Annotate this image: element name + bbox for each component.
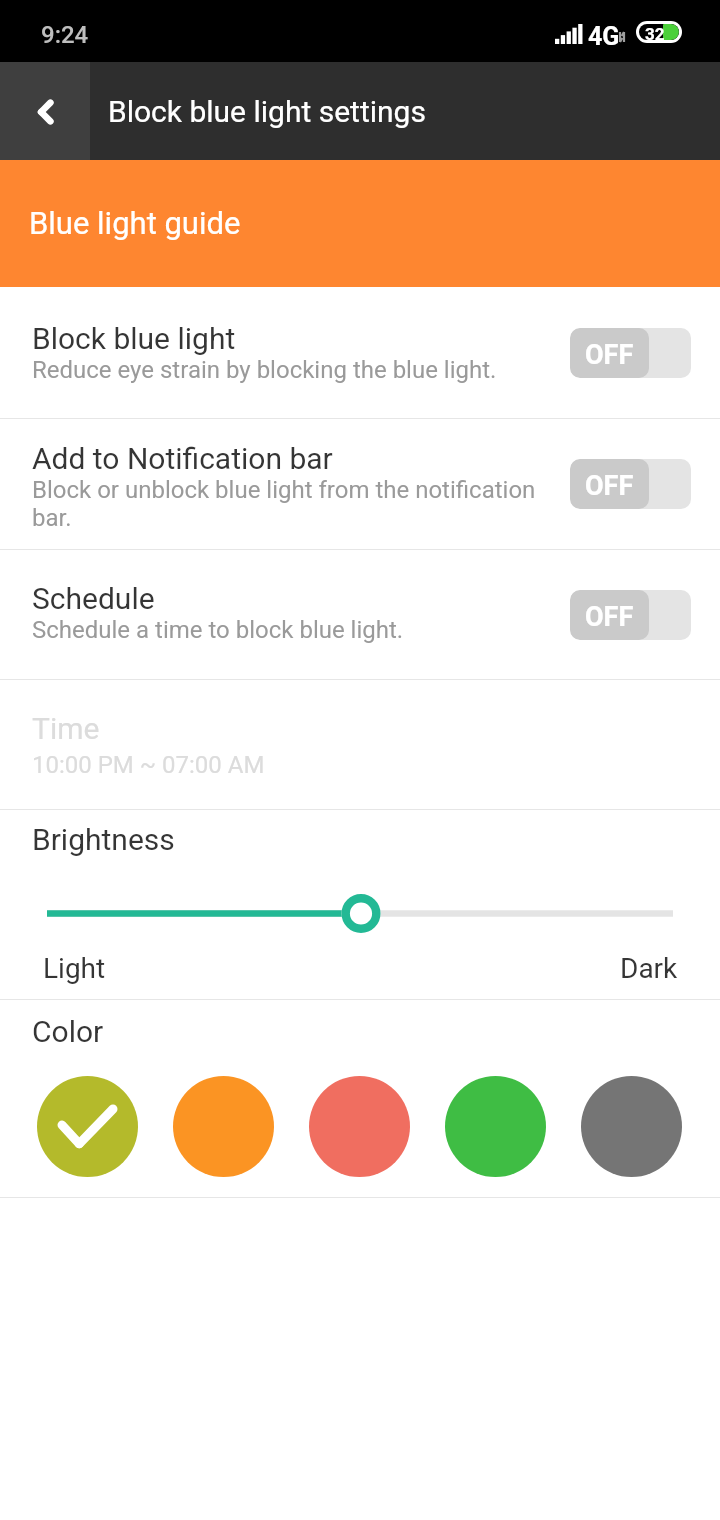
staticText: Reduce eye strain by blocking the blue l… <box>32 356 497 384</box>
staticText: Add to Notification bar <box>32 441 333 476</box>
button[interactable]: Toggle switch, off <box>570 459 691 509</box>
button[interactable]: Schedule <box>0 550 720 679</box>
button[interactable]: Colour option 5 <box>581 1076 682 1177</box>
button[interactable]: Toggle switch, off <box>570 328 691 378</box>
button[interactable]: Colour option 3 <box>309 1076 410 1177</box>
staticText: Blue light guide <box>29 205 241 241</box>
button[interactable]: Time <box>0 680 720 809</box>
staticText: OFF <box>585 470 634 502</box>
staticText: Block or unblock blue light from the not… <box>32 476 538 532</box>
staticText: Dark <box>620 952 678 985</box>
staticText: Schedule a time to block blue light. <box>32 616 404 644</box>
staticText: 10:00 PM ~ 07:00 AM <box>32 751 265 779</box>
staticText: 9:24 <box>41 21 89 49</box>
staticText: Brightness <box>32 822 175 857</box>
button[interactable]: Colour option 4 <box>445 1076 546 1177</box>
button[interactable]: Add to Notification bar <box>0 419 720 549</box>
staticText: OFF <box>585 339 634 371</box>
staticText: Light <box>43 952 106 985</box>
button[interactable]: Brightness slider <box>0 889 720 938</box>
button[interactable]: Back <box>0 62 90 160</box>
staticText: OFF <box>585 601 634 633</box>
staticText: Schedule <box>32 581 155 616</box>
staticText: Block blue light <box>32 321 236 356</box>
staticText: Block blue light settings <box>108 94 426 129</box>
staticText: 4G <box>588 22 620 51</box>
button[interactable]: Toggle switch, off <box>570 590 691 640</box>
staticText: 32 <box>645 24 665 40</box>
button[interactable]: Blue light guide <box>0 160 720 287</box>
staticText: Color <box>32 1014 104 1049</box>
button[interactable]: Colour option 1 <box>37 1076 138 1177</box>
button[interactable]: Block blue light <box>0 287 720 418</box>
staticText: Time <box>32 711 100 746</box>
button[interactable]: Colour option 2 <box>173 1076 274 1177</box>
